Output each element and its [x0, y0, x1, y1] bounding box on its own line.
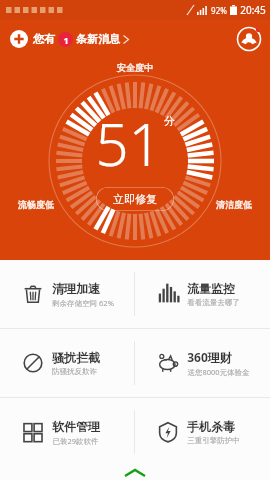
- button[interactable]: 骚扰拦截: [0, 329, 134, 397]
- staticText: 360理财: [187, 349, 232, 365]
- staticText: 分: [164, 114, 175, 128]
- staticText: 条新消息: [76, 32, 120, 46]
- staticText: 清理加速: [52, 281, 100, 296]
- staticText: 剩余存储空间 62%: [52, 298, 114, 308]
- staticText: 20:45: [240, 3, 266, 17]
- staticText: 清洁度低: [216, 199, 252, 210]
- button[interactable]: Account: [236, 26, 262, 52]
- button[interactable]: 软件管理: [0, 398, 134, 466]
- staticText: 软件管理: [52, 419, 100, 434]
- staticText: 骚扰拦截: [52, 350, 100, 365]
- staticText: 安全度中: [117, 62, 153, 73]
- staticText: 您有: [33, 32, 55, 46]
- staticText: 防骚扰反欺诈: [52, 367, 97, 376]
- staticText: 送您8000元体验金: [187, 367, 250, 377]
- button[interactable]: 手机杀毒: [135, 398, 270, 466]
- button[interactable]: 您有: [8, 28, 131, 50]
- button[interactable]: 流量监控: [135, 260, 270, 328]
- staticText: 已装29款软件: [52, 436, 99, 446]
- staticText: 手机杀毒: [187, 419, 235, 434]
- staticText: 立即修复: [113, 192, 157, 206]
- button[interactable]: 360理财: [135, 329, 270, 397]
- staticText: 看看流量去哪了: [187, 298, 240, 307]
- staticText: 1: [63, 34, 69, 46]
- staticText: 流量监控: [187, 281, 235, 296]
- button[interactable]: 立即修复: [95, 187, 175, 211]
- staticText: 三重引擎防护中: [187, 436, 240, 445]
- staticText: 51: [95, 104, 162, 183]
- staticText: 92%: [211, 5, 227, 16]
- button[interactable]: 清理加速: [0, 260, 134, 328]
- staticText: 流畅度低: [18, 199, 54, 210]
